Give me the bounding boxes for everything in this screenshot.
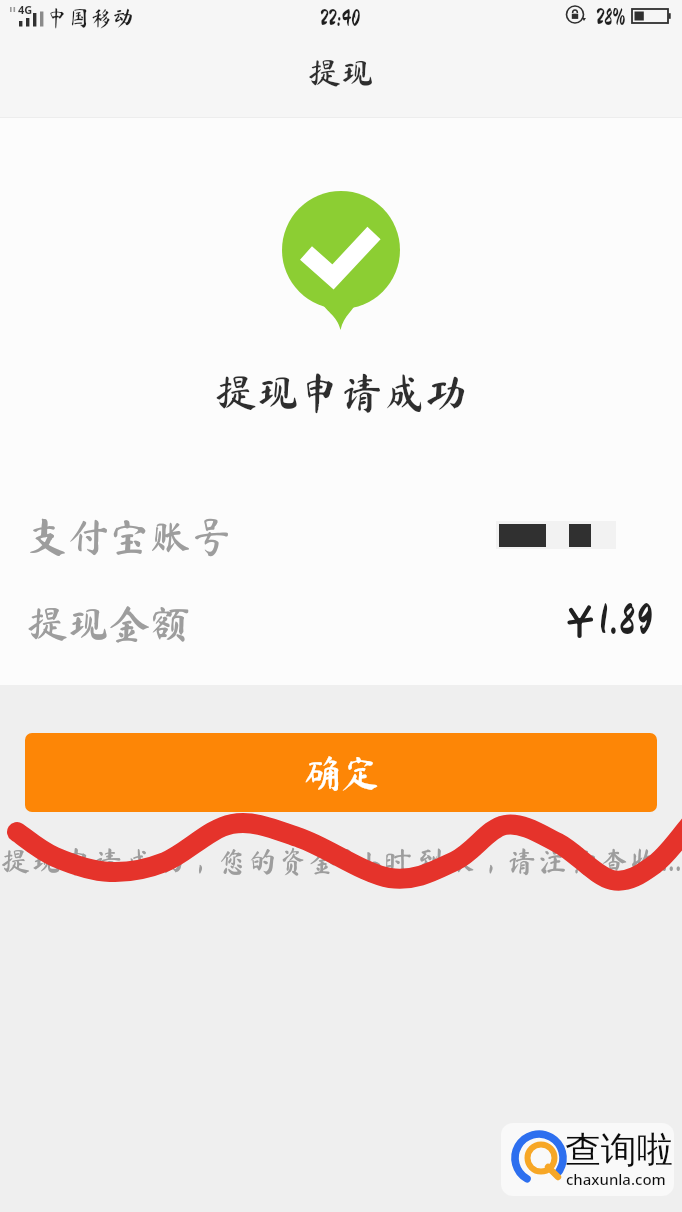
button[interactable]: 确定 xyxy=(25,733,657,812)
staticText: 提现申请成功 xyxy=(215,371,468,413)
staticText: 确定 xyxy=(303,754,380,792)
staticText: 查询啦 xyxy=(565,1127,673,1172)
staticText: 提现申请成功，您的资金2小时到账，请注意查收... xyxy=(1,846,682,875)
staticText: 提现 xyxy=(308,56,374,89)
other: chaxunla.com watermark xyxy=(501,1123,674,1196)
staticText: 28% xyxy=(596,7,626,29)
staticText: 1.89 xyxy=(599,599,655,641)
staticText: chaxunla.com xyxy=(566,1169,666,1189)
staticText: 支付宝账号 xyxy=(27,516,232,557)
button[interactable]: 提现 xyxy=(0,34,682,111)
staticText: 中国移动 xyxy=(46,7,135,29)
staticText: 提现金额 xyxy=(27,603,191,644)
staticText: 22:40 xyxy=(320,8,361,30)
staticText: 4G xyxy=(18,2,33,17)
